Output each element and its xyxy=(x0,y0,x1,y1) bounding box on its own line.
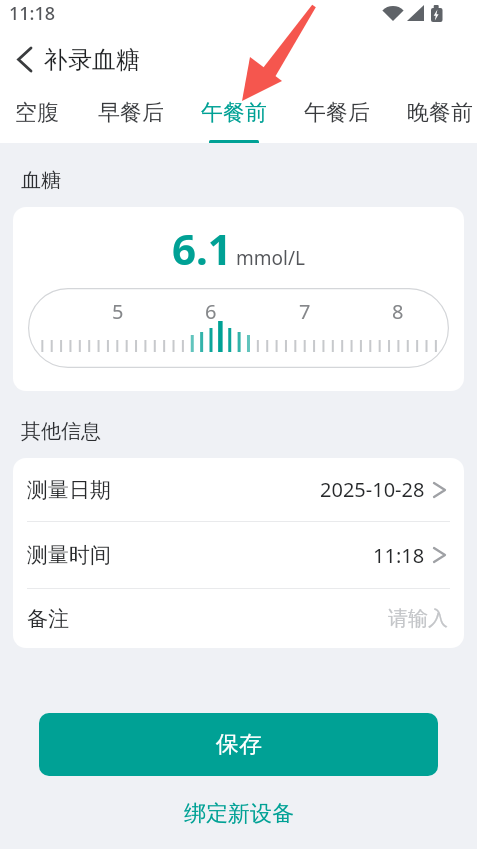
staticText: 保存 xyxy=(216,730,262,759)
staticText: 6.1 xyxy=(172,220,232,277)
button[interactable]: 备注 xyxy=(13,589,464,648)
button[interactable]: 保存 xyxy=(39,713,438,776)
staticText: 血糖 xyxy=(21,168,61,193)
button[interactable]: 晚餐前 xyxy=(407,99,473,127)
staticText: 午餐前 xyxy=(201,99,267,127)
staticText: 午餐后 xyxy=(304,99,370,127)
staticText: 5 xyxy=(112,298,124,325)
staticText: 备注 xyxy=(27,606,69,632)
button[interactable]: 空腹 xyxy=(15,99,59,127)
staticText: 测量时间 xyxy=(27,542,111,568)
button[interactable]: 绑定新设备 xyxy=(178,800,300,828)
staticText: 请输入 xyxy=(388,606,448,631)
staticText: 8 xyxy=(392,298,404,325)
button[interactable]: 测量时间 xyxy=(13,522,464,588)
staticText: 补录血糖 xyxy=(44,45,140,75)
staticText: 空腹 xyxy=(15,99,59,127)
button[interactable]: 早餐后 xyxy=(98,99,164,127)
staticText: 绑定新设备 xyxy=(184,800,294,828)
staticText: 7 xyxy=(299,298,311,325)
staticText: 晚餐前 xyxy=(407,99,473,127)
button[interactable]: 测量日期 xyxy=(13,458,464,521)
staticText: 测量日期 xyxy=(27,477,111,503)
staticText: 早餐后 xyxy=(98,99,164,127)
staticText: 11:18 xyxy=(373,542,425,569)
staticText: 6 xyxy=(205,298,217,325)
staticText: 11:18 xyxy=(9,1,56,26)
staticText: 其他信息 xyxy=(21,419,101,444)
button[interactable]: 午餐后 xyxy=(304,99,370,127)
button[interactable]: 午餐前 xyxy=(201,99,267,127)
button[interactable] xyxy=(0,32,44,91)
staticText: 2025-10-28 xyxy=(320,476,425,503)
staticText: mmol/L xyxy=(236,245,305,271)
